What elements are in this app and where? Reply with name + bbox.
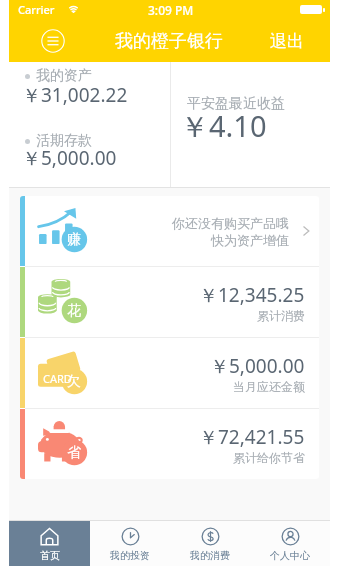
staticText: ￥12,345.25 [199, 282, 305, 308]
staticText: ￥72,421.55 [199, 424, 305, 450]
staticText: 个人中心 [270, 549, 310, 562]
staticText: 快为资产增值 [211, 232, 289, 248]
staticText: ￥5,000.00 [210, 353, 305, 379]
button[interactable]: 我的投资 [90, 521, 170, 566]
button[interactable]: 我的消费 [170, 521, 250, 566]
staticText: ￥4.10 [180, 106, 267, 146]
staticText: Carrier [18, 2, 55, 17]
button[interactable]: 省 [20, 409, 319, 479]
staticText: ￥31,002.22 [22, 82, 128, 108]
button[interactable]: 个人中心 [250, 521, 330, 566]
staticText: 退出 [270, 31, 304, 52]
staticText: 省 [67, 444, 81, 462]
staticText: 3:09 PM [148, 2, 194, 18]
staticText: ￥5,000.00 [22, 145, 117, 171]
staticText: 赚 [67, 231, 81, 249]
staticText: 首页 [40, 549, 60, 562]
staticText: 花 [67, 302, 81, 320]
staticText: 我的投资 [110, 549, 150, 562]
staticText: 活期存款 [36, 132, 92, 150]
staticText: 当月应还金额 [233, 379, 305, 394]
staticText: 我的橙子银行 [115, 30, 223, 53]
staticText: 累计给你节省 [233, 450, 305, 465]
button[interactable]: 赚 [20, 196, 319, 266]
button[interactable]: 退出 [270, 31, 304, 52]
button[interactable]: CARD [20, 338, 319, 408]
staticText: 我的资产 [36, 67, 92, 85]
button[interactable]: 首页 [9, 521, 90, 566]
staticText: 欠 [67, 373, 81, 391]
staticText: 我的消费 [190, 549, 230, 562]
button[interactable]: 花 [20, 267, 319, 337]
staticText: 累计消费 [257, 308, 305, 323]
staticText: 你还没有购买产品哦 [172, 215, 289, 231]
staticText: CARD [43, 371, 72, 386]
button[interactable]: Menu [41, 29, 65, 53]
staticText: 平安盈最近收益 [187, 95, 285, 113]
